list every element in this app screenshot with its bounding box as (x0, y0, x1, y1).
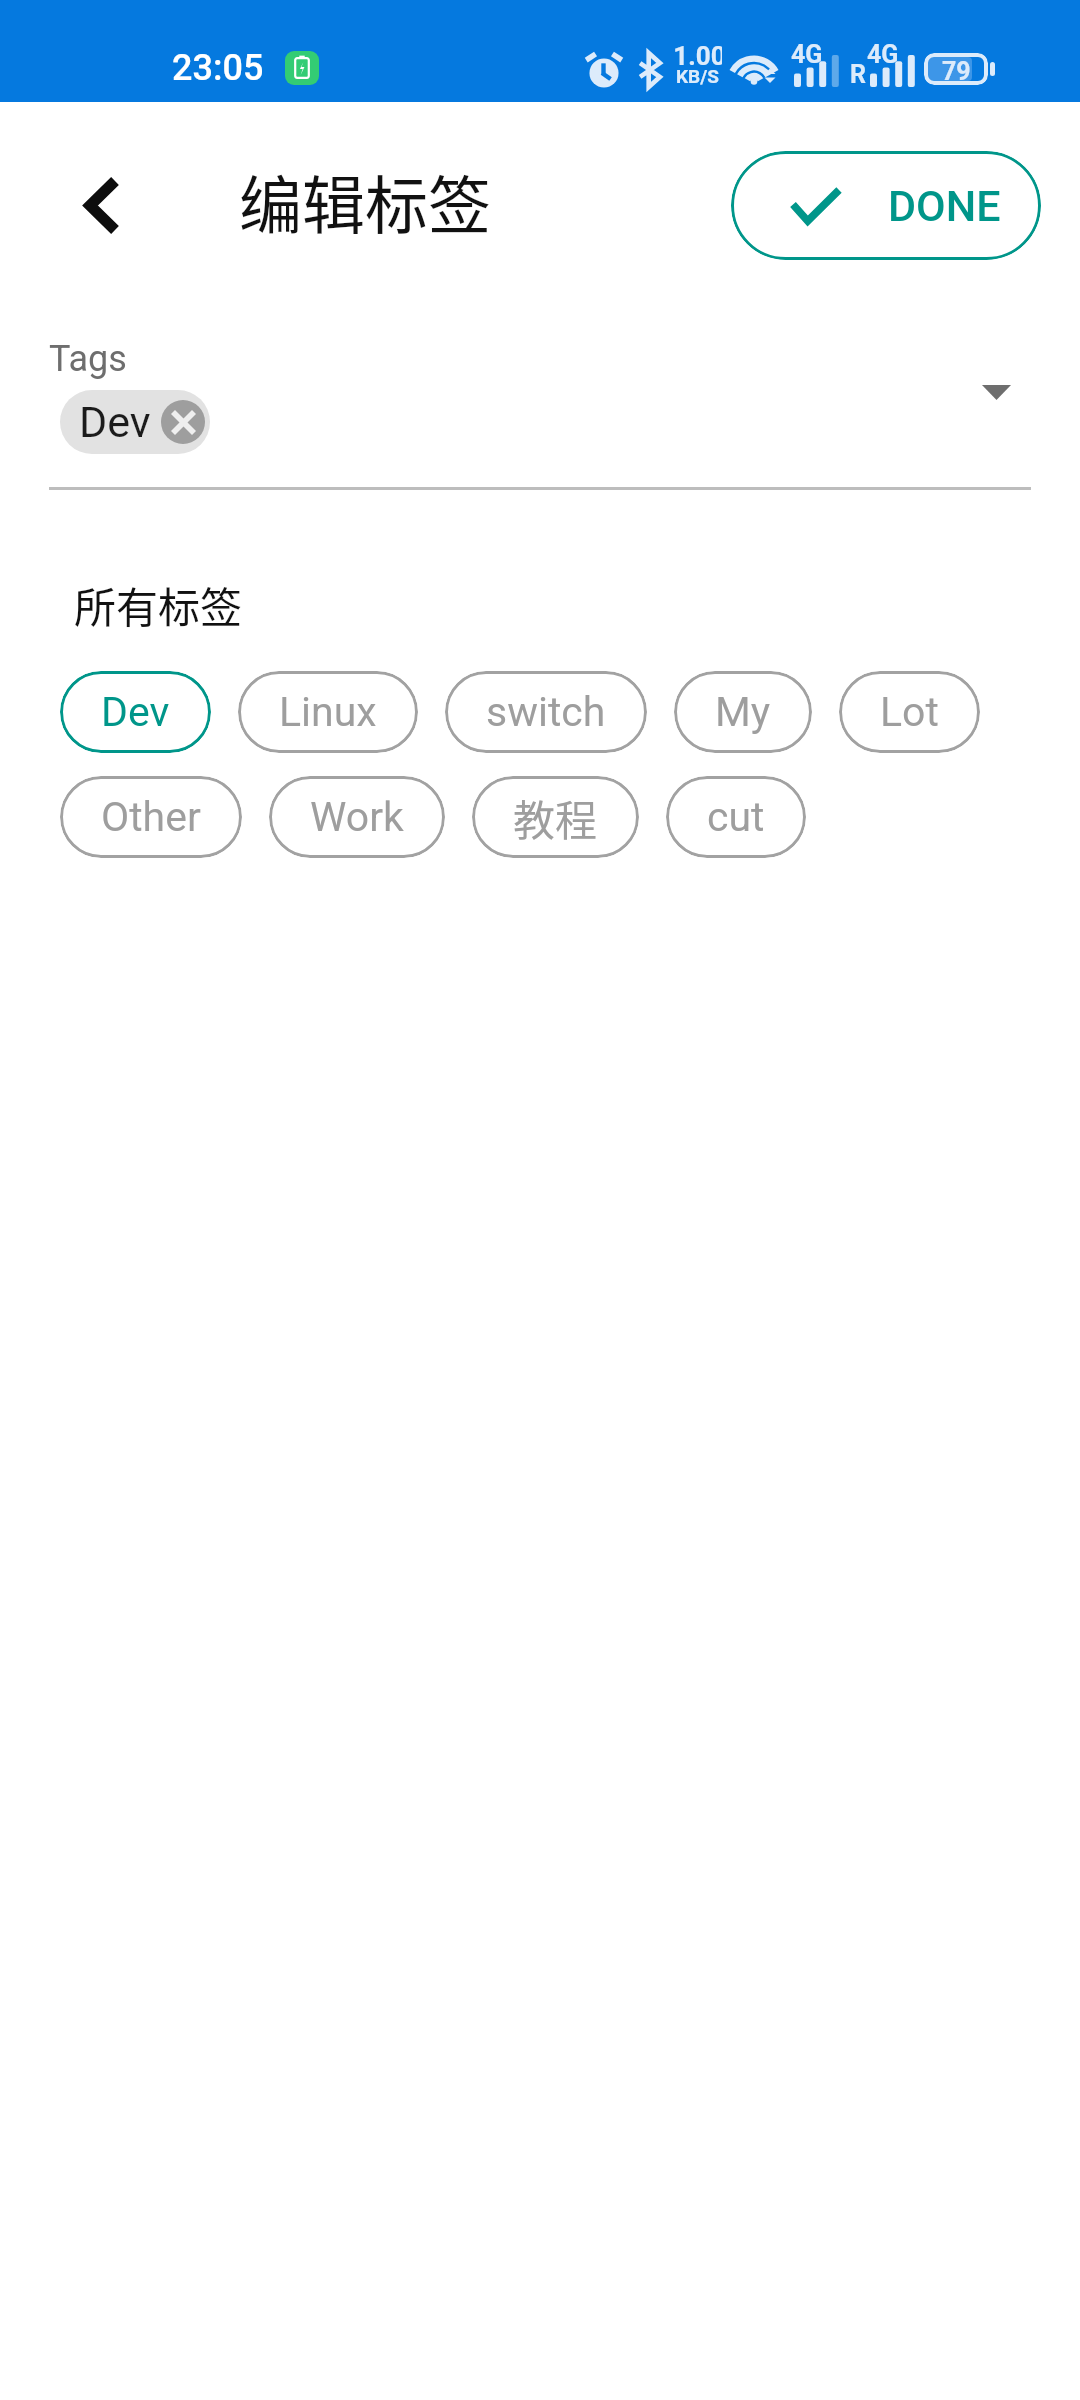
button[interactable]: Other (60, 776, 242, 858)
button[interactable]: cut (666, 776, 806, 858)
button[interactable]: switch (445, 671, 647, 753)
staticText: Tags (49, 338, 127, 380)
button[interactable]: Expand tags (960, 356, 1032, 428)
staticText: 教程 (513, 787, 598, 848)
staticText: My (715, 688, 771, 736)
staticText: R (850, 60, 867, 89)
button[interactable]: DONE (731, 151, 1041, 260)
button[interactable]: My (674, 671, 812, 753)
staticText: Lot (880, 688, 939, 736)
button[interactable]: Dev (60, 671, 211, 753)
staticText: switch (486, 688, 606, 736)
button[interactable]: Linux (238, 671, 418, 753)
staticText: 编辑标签 (239, 155, 491, 246)
staticText: DONE (888, 181, 1001, 231)
staticText: Linux (279, 688, 377, 736)
staticText: 4G (791, 40, 823, 69)
button[interactable]: Dev (60, 390, 210, 454)
staticText: Work (310, 793, 404, 841)
staticText: Dev (79, 397, 151, 447)
staticText: Other (101, 793, 201, 841)
staticText: 1.00 (673, 41, 722, 71)
staticText: 79 (942, 57, 971, 81)
button[interactable]: 教程 (472, 776, 639, 858)
staticText: 所有标签 (74, 574, 243, 635)
button[interactable]: Work (269, 776, 445, 858)
staticText: Dev (101, 688, 170, 736)
staticText: 23:05 (172, 47, 264, 89)
staticText: 4G (867, 40, 899, 69)
staticText: cut (707, 793, 765, 841)
button[interactable]: Back (54, 157, 150, 253)
staticText: KB/S (676, 65, 719, 87)
button[interactable]: Lot (839, 671, 980, 753)
